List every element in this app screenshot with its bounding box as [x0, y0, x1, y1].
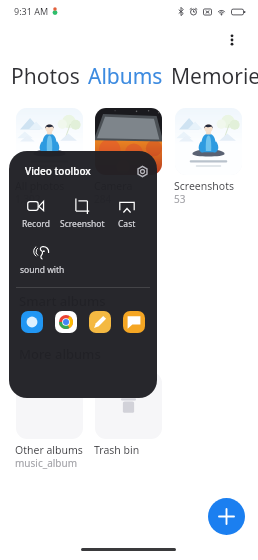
button[interactable]: sound with: [20, 244, 64, 276]
button[interactable]: Memories: [167, 62, 258, 91]
button[interactable]: Toolbox settings: [132, 161, 152, 181]
button[interactable]: [95, 108, 162, 175]
button[interactable]: [175, 108, 242, 175]
button[interactable]: Albums: [84, 62, 167, 91]
button[interactable]: Files: [123, 311, 145, 333]
staticText: 53: [174, 192, 186, 206]
staticText: music_album: [15, 456, 78, 470]
button[interactable]: Create album: [208, 498, 245, 535]
staticText: Cast: [118, 218, 136, 230]
staticText: Photos: [11, 62, 80, 91]
staticText: Video toolbox: [25, 164, 91, 178]
button[interactable]: [16, 108, 83, 175]
staticText: Screenshot: [60, 218, 105, 230]
button[interactable]: [16, 372, 83, 439]
staticText: Memories: [171, 62, 258, 91]
button[interactable]: Chrome: [55, 311, 77, 333]
button[interactable]: [95, 372, 162, 439]
button[interactable]: Notes: [89, 311, 111, 333]
staticText: 9:31 AM: [14, 5, 49, 17]
button[interactable]: Cast: [109, 197, 145, 230]
button[interactable]: Record: [14, 197, 58, 230]
staticText: 1,302: [15, 192, 41, 206]
staticText: Trash bin: [94, 443, 140, 457]
button[interactable]: Photos: [11, 62, 84, 91]
staticText: Other albums: [15, 443, 83, 457]
button[interactable]: Messages: [21, 311, 43, 333]
staticText: Screenshots: [174, 179, 234, 193]
button[interactable]: Screenshot: [58, 197, 106, 230]
staticText: Albums: [88, 62, 163, 91]
staticText: sound with: [20, 264, 64, 276]
button[interactable]: More options: [220, 28, 244, 52]
staticText: Record: [22, 218, 50, 230]
